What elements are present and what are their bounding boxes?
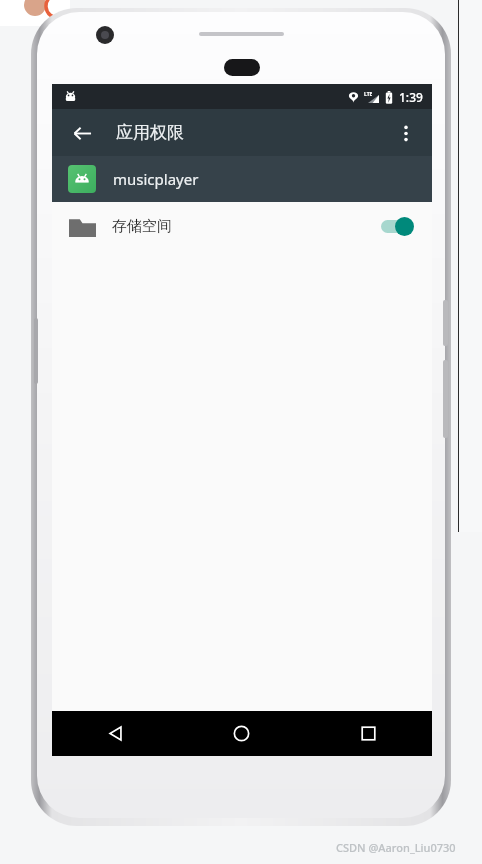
button[interactable]: Back bbox=[64, 115, 100, 151]
staticText: musicplayer bbox=[113, 169, 199, 189]
button[interactable]: Recent apps bbox=[305, 711, 432, 756]
button[interactable]: musicplayer bbox=[52, 156, 432, 202]
staticText: 1:39 bbox=[399, 89, 423, 105]
staticText: 存储空间 bbox=[112, 217, 172, 236]
button[interactable]: Back bbox=[52, 711, 178, 756]
button[interactable]: Home bbox=[178, 711, 305, 756]
staticText: LTE bbox=[364, 91, 373, 98]
button[interactable]: More options bbox=[388, 115, 424, 151]
button[interactable]: Storage permission toggle bbox=[379, 214, 415, 238]
button[interactable]: 存储空间 bbox=[52, 202, 432, 250]
staticText: 应用权限 bbox=[116, 122, 184, 143]
staticText: CSDN @Aaron_Liu0730 bbox=[336, 840, 456, 855]
